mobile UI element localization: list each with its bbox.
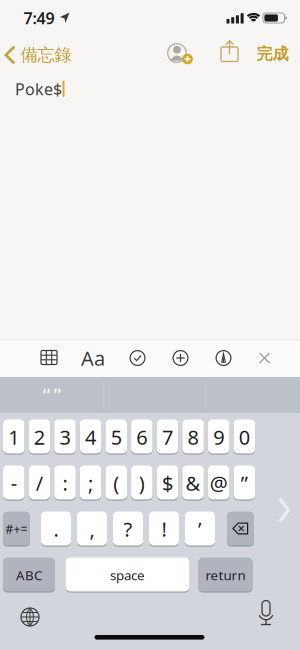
button[interactable]: Aa: [80, 349, 106, 367]
button[interactable]: .: [41, 511, 71, 546]
staticText: 6: [136, 424, 147, 450]
staticText: 3: [59, 424, 70, 450]
staticText: “: [42, 382, 50, 407]
button[interactable]: 0: [234, 419, 255, 454]
button[interactable]: [167, 42, 193, 65]
staticText: !: [161, 516, 166, 542]
staticText: 完成: [256, 44, 288, 64]
staticText: &: [186, 470, 201, 496]
button[interactable]: ?: [113, 511, 143, 546]
staticText: 5: [111, 424, 122, 450]
button[interactable]: !: [149, 511, 179, 546]
button[interactable]: 6: [131, 419, 153, 454]
button[interactable]: return: [198, 557, 252, 592]
button[interactable]: [278, 497, 290, 523]
staticText: ABC: [16, 566, 42, 584]
button[interactable]: 備忘錄: [2, 44, 78, 66]
button[interactable]: @: [208, 465, 229, 500]
button[interactable]: /: [29, 465, 50, 500]
button[interactable]: [41, 350, 58, 365]
staticText: -: [11, 470, 17, 496]
staticText: ”: [241, 470, 248, 496]
button[interactable]: [20, 607, 39, 626]
staticText: Poke$: [15, 78, 62, 100]
button[interactable]: #+=: [3, 511, 30, 546]
button[interactable]: 9: [208, 419, 229, 454]
button[interactable]: space: [65, 557, 189, 592]
staticText: 8: [188, 424, 199, 450]
button[interactable]: 1: [3, 419, 24, 454]
button[interactable]: “: [2, 379, 102, 409]
staticText: #+=: [5, 521, 27, 537]
button[interactable]: [215, 350, 231, 366]
button[interactable]: ;: [80, 465, 101, 500]
staticText: 1: [8, 424, 19, 450]
button[interactable]: 8: [182, 419, 204, 454]
button[interactable]: ,: [77, 511, 107, 546]
button[interactable]: [227, 511, 254, 546]
staticText: 2: [34, 424, 45, 450]
staticText: 備忘錄: [20, 44, 71, 66]
button[interactable]: 7: [157, 419, 178, 454]
button[interactable]: [172, 350, 188, 366]
staticText: .: [53, 516, 58, 542]
staticText: 4: [85, 424, 96, 450]
button[interactable]: 完成: [250, 43, 294, 65]
staticText: ;: [88, 470, 93, 496]
staticText: $: [162, 470, 173, 496]
staticText: space: [110, 566, 145, 584]
staticText: return: [205, 566, 245, 584]
staticText: ”: [53, 382, 61, 407]
button[interactable]: :: [54, 465, 76, 500]
button[interactable]: [257, 600, 275, 625]
button[interactable]: ABC: [3, 557, 55, 592]
staticText: 0: [239, 424, 250, 450]
button[interactable]: $: [157, 465, 178, 500]
staticText: @: [210, 470, 228, 496]
button[interactable]: [258, 352, 270, 364]
button[interactable]: ): [131, 465, 153, 500]
button[interactable]: (: [105, 465, 127, 500]
button[interactable]: 3: [54, 419, 76, 454]
staticText: :: [62, 470, 67, 496]
staticText: ,: [89, 516, 94, 542]
staticText: 9: [213, 424, 224, 450]
button[interactable]: -: [3, 465, 24, 500]
button[interactable]: &: [182, 465, 204, 500]
staticText: (: [113, 470, 119, 496]
button[interactable]: 4: [80, 419, 101, 454]
button[interactable]: ”: [234, 465, 255, 500]
button[interactable]: [129, 350, 145, 366]
staticText: ’: [198, 516, 202, 542]
button[interactable]: 5: [105, 419, 127, 454]
staticText: ): [139, 470, 145, 496]
staticText: ?: [123, 516, 132, 542]
staticText: /: [36, 470, 43, 496]
staticText: 7:49: [23, 7, 54, 29]
button[interactable]: 2: [29, 419, 50, 454]
staticText: Aa: [81, 345, 105, 371]
button[interactable]: [221, 40, 238, 62]
button[interactable]: ’: [185, 511, 215, 546]
staticText: 7: [162, 424, 173, 450]
